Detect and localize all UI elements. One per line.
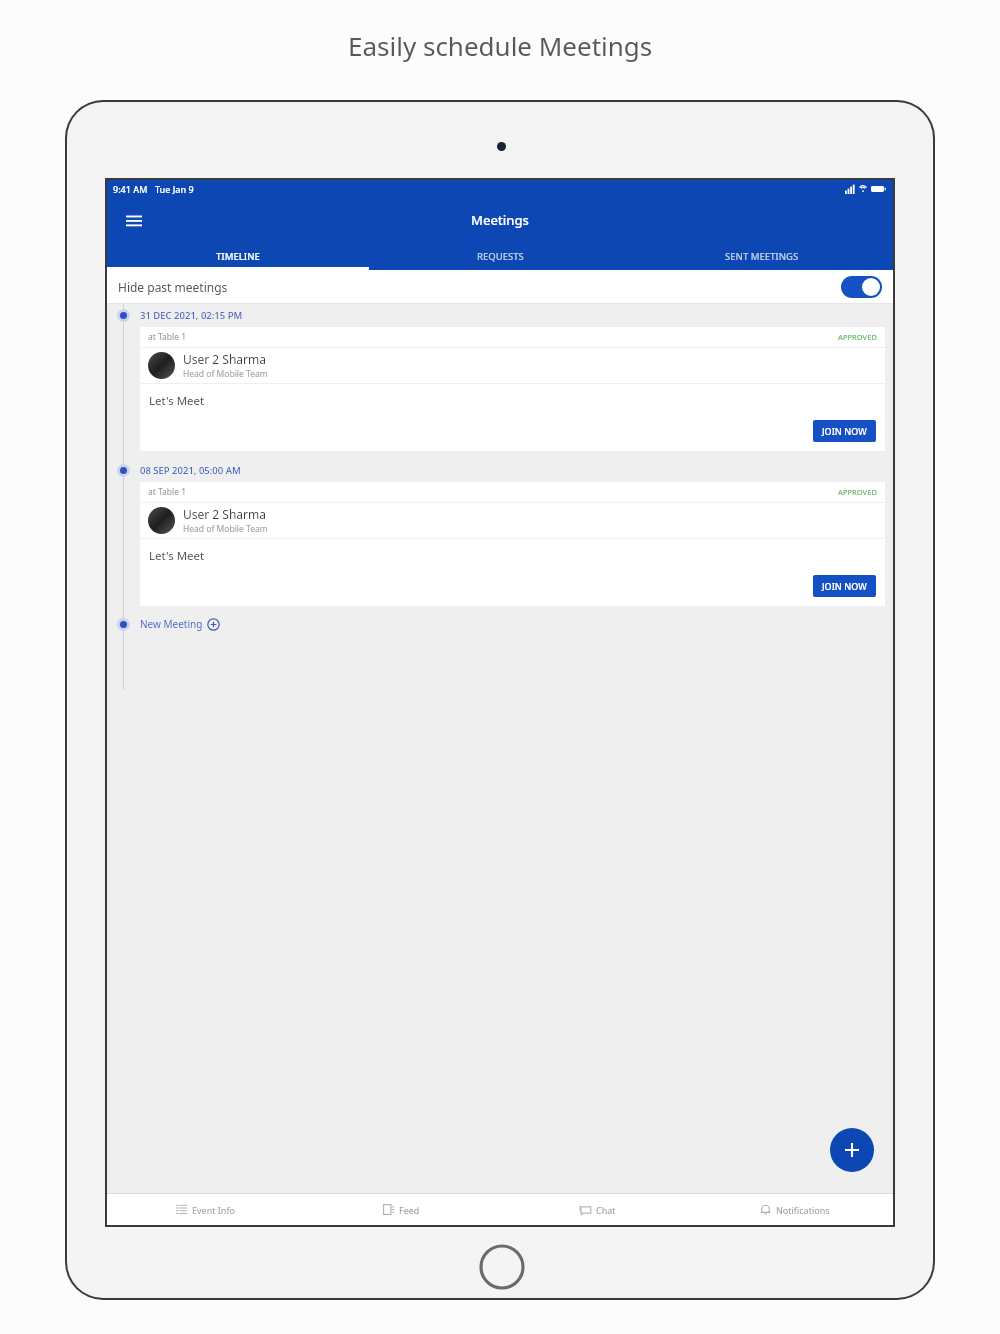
button[interactable]: Notifications bbox=[696, 1194, 893, 1225]
staticText: Feed bbox=[399, 1204, 420, 1216]
staticText: User 2 Sharma bbox=[183, 506, 266, 522]
button[interactable]: at Table 1 bbox=[140, 327, 885, 451]
button[interactable]: TIMELINE bbox=[107, 242, 369, 270]
staticText: SENT MEETINGS bbox=[725, 250, 799, 263]
staticText: User 2 Sharma bbox=[183, 351, 266, 367]
staticText: Head of Mobile Team bbox=[183, 368, 268, 380]
button[interactable]: Chat bbox=[499, 1194, 696, 1225]
staticText: Head of Mobile Team bbox=[183, 523, 268, 535]
staticText: REQUESTS bbox=[477, 250, 524, 263]
staticText: at Table 1 bbox=[148, 486, 187, 498]
staticText: APPROVED bbox=[838, 487, 877, 497]
staticText: Notifications bbox=[776, 1204, 830, 1216]
staticText: Hide past meetings bbox=[118, 279, 228, 295]
button[interactable]: New meeting bbox=[830, 1128, 874, 1172]
staticText: Let's Meet bbox=[149, 548, 205, 564]
staticText: Chat bbox=[596, 1204, 616, 1216]
staticText: Meetings bbox=[471, 211, 529, 229]
button[interactable]: REQUESTS bbox=[369, 242, 631, 270]
staticText: 31 DEC 2021, 02:15 PM bbox=[140, 309, 243, 322]
staticText: JOIN NOW bbox=[822, 425, 867, 437]
button[interactable]: SENT MEETINGS bbox=[631, 242, 893, 270]
staticText: Event Info bbox=[192, 1204, 235, 1216]
button[interactable]: Hide past meetings bbox=[107, 270, 893, 303]
button[interactable]: New Meeting bbox=[140, 617, 220, 631]
button[interactable]: Hide past meetings toggle bbox=[841, 276, 882, 298]
button[interactable]: JOIN NOW bbox=[813, 575, 876, 597]
staticText: Easily schedule Meetings bbox=[348, 28, 653, 63]
staticText: TIMELINE bbox=[216, 250, 260, 263]
staticText: at Table 1 bbox=[148, 331, 187, 343]
staticText: Tue Jan 9 bbox=[155, 183, 194, 195]
staticText: 08 SEP 2021, 05:00 AM bbox=[140, 464, 241, 477]
button[interactable]: JOIN NOW bbox=[813, 420, 876, 442]
staticText: APPROVED bbox=[838, 332, 877, 342]
staticText: Let's Meet bbox=[149, 393, 205, 409]
button[interactable]: Feed bbox=[303, 1194, 499, 1225]
staticText: New Meeting bbox=[140, 617, 203, 631]
staticText: JOIN NOW bbox=[822, 580, 867, 592]
button[interactable]: Event Info bbox=[107, 1194, 303, 1225]
button[interactable]: at Table 1 bbox=[140, 482, 885, 606]
button[interactable]: Open navigation menu bbox=[119, 205, 149, 235]
staticText: 9:41 AM bbox=[113, 183, 148, 195]
